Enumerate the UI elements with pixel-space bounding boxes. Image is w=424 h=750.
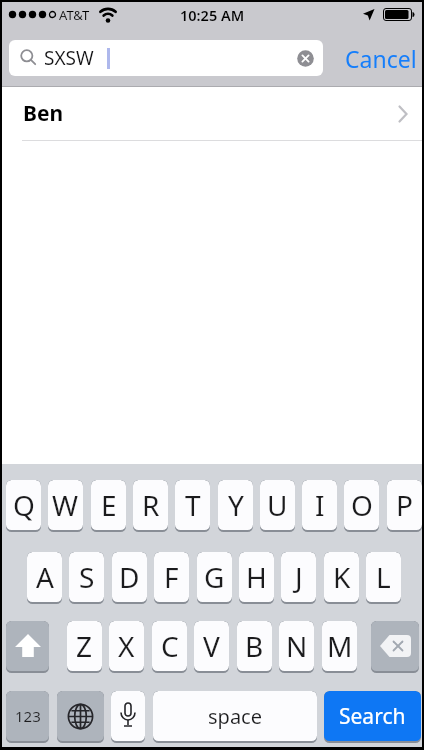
staticText: S xyxy=(79,558,95,596)
staticText: K xyxy=(333,558,351,596)
staticText: Z xyxy=(76,627,93,665)
button[interactable]: Ben xyxy=(2,87,422,140)
staticText: L xyxy=(376,558,391,596)
staticText: M xyxy=(327,627,353,665)
button[interactable]: B xyxy=(237,621,272,673)
staticText: SXSW xyxy=(44,45,94,71)
button[interactable]: D xyxy=(112,552,147,604)
button[interactable] xyxy=(371,621,419,673)
staticText: V xyxy=(203,627,220,665)
button[interactable]: V xyxy=(194,621,229,673)
button[interactable]: X xyxy=(109,621,144,673)
staticText: 10:25 AM xyxy=(180,5,245,25)
button[interactable]: U xyxy=(260,480,295,532)
staticText: G xyxy=(204,558,225,596)
button[interactable]: J xyxy=(281,552,316,604)
button[interactable]: Cancel xyxy=(336,40,424,76)
staticText: N xyxy=(286,627,308,665)
staticText: 123 xyxy=(15,706,41,726)
staticText: E xyxy=(101,486,117,524)
button[interactable] xyxy=(297,50,314,67)
staticText: H xyxy=(246,558,267,596)
staticText: space xyxy=(208,703,262,730)
button[interactable] xyxy=(111,691,145,743)
button[interactable]: G xyxy=(197,552,232,604)
button[interactable]: L xyxy=(366,552,401,604)
button[interactable]: space xyxy=(153,691,317,743)
button[interactable]: H xyxy=(239,552,274,604)
staticText: P xyxy=(396,486,413,524)
button[interactable]: K xyxy=(324,552,359,604)
staticText: W xyxy=(52,486,79,524)
button[interactable] xyxy=(57,691,104,743)
staticText: T xyxy=(185,486,201,524)
button[interactable]: Z xyxy=(67,621,102,673)
staticText: D xyxy=(119,558,140,596)
button[interactable]: P xyxy=(387,480,422,532)
button[interactable]: F xyxy=(154,552,189,604)
staticText: C xyxy=(161,627,179,665)
staticText: A xyxy=(36,558,54,596)
button[interactable]: 123 xyxy=(6,691,49,743)
button[interactable]: Y xyxy=(218,480,253,532)
button[interactable]: S xyxy=(69,552,104,604)
button[interactable]: Q xyxy=(6,480,41,532)
button[interactable]: A xyxy=(27,552,62,604)
button[interactable]: W xyxy=(48,480,83,532)
staticText: X xyxy=(118,627,135,665)
button[interactable]: SXSW xyxy=(9,40,323,76)
button[interactable]: N xyxy=(279,621,314,673)
staticText: U xyxy=(267,486,288,524)
staticText: Y xyxy=(228,486,244,524)
button[interactable]: M xyxy=(322,621,357,673)
staticText: O xyxy=(351,486,373,524)
staticText: Ben xyxy=(23,99,64,128)
button[interactable]: Search xyxy=(324,691,421,743)
staticText: AT&T xyxy=(59,6,90,24)
button[interactable]: I xyxy=(302,480,337,532)
staticText: F xyxy=(164,558,179,596)
staticText: B xyxy=(245,627,264,665)
button[interactable] xyxy=(6,621,49,673)
button[interactable]: E xyxy=(91,480,126,532)
button[interactable]: T xyxy=(175,480,210,532)
staticText: Q xyxy=(13,486,35,524)
staticText: R xyxy=(142,486,160,524)
button[interactable]: R xyxy=(133,480,168,532)
staticText: J xyxy=(295,558,303,596)
button[interactable]: C xyxy=(152,621,187,673)
staticText: Cancel xyxy=(345,43,417,74)
staticText: I xyxy=(315,486,325,524)
button[interactable]: O xyxy=(344,480,379,532)
staticText: Search xyxy=(339,702,406,731)
